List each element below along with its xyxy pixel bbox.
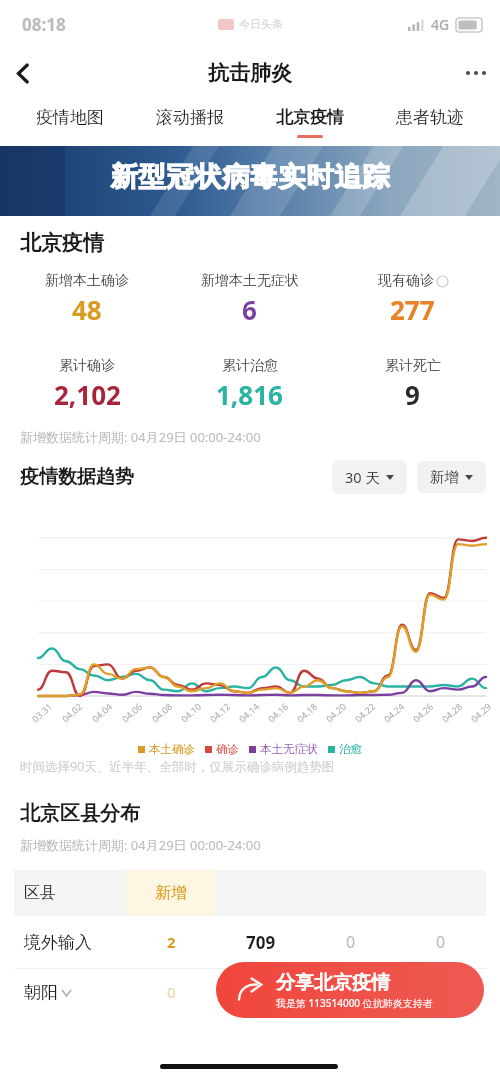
button[interactable]: 滚动播报 (130, 98, 250, 146)
staticText: 04.16 (265, 699, 291, 724)
button[interactable]: 境外输入 (14, 916, 486, 968)
staticText: 04.02 (59, 699, 85, 724)
button[interactable]: 治愈 (323, 742, 367, 756)
staticText: 04.29 (468, 699, 494, 724)
button[interactable]: 本土无症状 (244, 742, 323, 756)
button[interactable]: 患者轨迹 (370, 98, 490, 146)
staticText: 今日头条 (239, 17, 283, 31)
button[interactable]: 新增 (417, 461, 486, 493)
staticText: 04.28 (439, 699, 465, 724)
staticText: 6 (242, 292, 257, 327)
staticText: 9 (405, 377, 420, 412)
staticText: 08:18 (22, 13, 66, 36)
staticText: 0 (346, 931, 356, 953)
staticText: 48 (72, 292, 102, 327)
staticText: 朝阳 (24, 982, 58, 1003)
staticText: 新型冠状病毒实时追踪 (110, 160, 390, 194)
staticText: 04.14 (236, 699, 262, 724)
staticText: 累计治愈 (222, 357, 278, 375)
staticText: 04.24 (381, 699, 407, 724)
staticText: 新增数据统计周期: 04月29日 00:00-24:00 (20, 836, 500, 854)
staticText: 18 (431, 981, 451, 1004)
staticText: 125 (336, 981, 366, 1004)
button[interactable]: 本土确诊 (133, 742, 200, 756)
staticText: 患者轨迹 (396, 107, 464, 128)
staticText: 04.20 (323, 699, 349, 724)
staticText: 北京疫情 (20, 230, 500, 256)
button[interactable]: 新增本土确诊 (6, 272, 168, 327)
button[interactable]: 北京疫情 (250, 98, 370, 146)
staticText: 区县 (24, 883, 56, 903)
staticText: 本土确诊 (149, 742, 195, 756)
staticText: 0 (167, 982, 176, 1002)
button[interactable]: Back (0, 50, 46, 96)
staticText: 04.26 (410, 699, 436, 724)
staticText: 累计确诊 (59, 357, 115, 375)
staticText: 现有确诊 (378, 272, 434, 290)
button[interactable]: 累计确诊 (6, 357, 168, 412)
staticText: 滚动播报 (156, 107, 224, 128)
staticText: 累计死亡 (385, 357, 441, 375)
staticText: 抗击肺炎 (208, 60, 292, 86)
staticText: 确诊 (216, 742, 239, 756)
staticText: 709 (246, 931, 276, 954)
staticText: 我是第 113514000 位抗肺炎支持者 (276, 996, 433, 1010)
button[interactable]: More options (452, 49, 500, 97)
button[interactable]: 30 天 (332, 460, 407, 494)
button[interactable]: 朝阳 (14, 969, 486, 1015)
staticText: 04.12 (207, 699, 233, 724)
button[interactable]: 累计死亡 (331, 357, 494, 412)
staticText: 本土无症状 (260, 742, 318, 756)
staticText: 30 天 (345, 467, 380, 487)
button[interactable]: 疫情地图 (10, 98, 130, 146)
staticText: 疫情地图 (36, 107, 104, 128)
button[interactable]: 分享北京疫情 (216, 962, 484, 1018)
button[interactable]: 确诊 (200, 742, 244, 756)
staticText: 新增 (430, 468, 459, 486)
staticText: 新增数据统计周期: 04月29日 00:00-24:00 (20, 428, 500, 446)
button[interactable]: 现有确诊 (331, 272, 494, 327)
staticText: 新增 (155, 883, 187, 903)
staticText: 4G (431, 15, 450, 34)
staticText: 分享北京疫情 (276, 971, 390, 995)
staticText: 新增本土确诊 (45, 272, 129, 290)
button[interactable]: 累计治愈 (168, 357, 331, 412)
staticText: 03.31 (29, 699, 55, 724)
staticText: 04.18 (294, 699, 320, 724)
staticText: 04.08 (149, 699, 175, 724)
staticText: 新增本土无症状 (201, 272, 299, 290)
staticText: 04.04 (89, 699, 115, 724)
staticText: 治愈 (339, 742, 362, 756)
staticText: 04.10 (178, 699, 204, 724)
staticText: 04.22 (352, 699, 378, 724)
staticText: 04.06 (119, 699, 145, 724)
staticText: 北京疫情 (276, 107, 344, 128)
staticText: 2 (167, 932, 176, 952)
button[interactable]: 新增本土无症状 (168, 272, 331, 327)
staticText: 北京区县分布 (20, 801, 500, 826)
staticText: 249 (246, 981, 276, 1004)
staticText: 277 (390, 292, 435, 327)
staticText: 境外输入 (24, 932, 92, 953)
staticText: 疫情数据趋势 (20, 465, 134, 489)
staticText: 2,102 (54, 377, 121, 412)
staticText: 0 (436, 931, 446, 953)
staticText: 时间选择90天、近半年、全部时，仅展示确诊病例趋势图 (20, 758, 500, 775)
staticText: 1,816 (216, 377, 283, 412)
